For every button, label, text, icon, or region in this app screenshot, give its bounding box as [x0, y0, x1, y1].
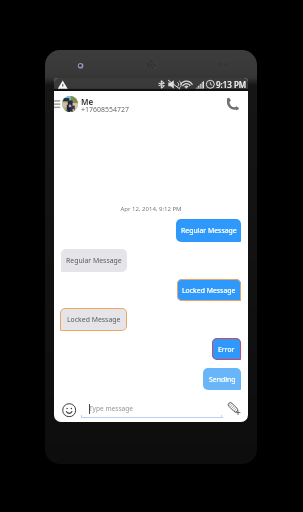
button[interactable]: Locked Message: [60, 308, 127, 331]
staticText: +17608554727: [81, 105, 130, 115]
button[interactable]: Insert emoji: [62, 403, 76, 417]
button[interactable]: Locked Message: [177, 279, 241, 301]
staticText: 9:13 PM: [216, 79, 247, 90]
staticText: Me: [81, 96, 94, 107]
button[interactable]: Regular Message: [61, 249, 127, 272]
button[interactable]: Error: [212, 338, 241, 360]
button[interactable]: Contact photo: [62, 96, 78, 112]
button[interactable]: Sending: [203, 368, 241, 390]
staticText: Error: [218, 345, 235, 354]
staticText: Locked Message: [67, 315, 121, 324]
button[interactable]: Call: [219, 94, 239, 114]
staticText: Regular Message: [181, 226, 237, 235]
button[interactable]: Attach file: [225, 399, 245, 419]
staticText: Apr 12, 2014, 9:12 PM: [54, 205, 248, 213]
button[interactable]: Regular Message: [176, 219, 241, 242]
button[interactable]: Open navigation menu: [54, 90, 62, 112]
staticText: Type message: [89, 404, 134, 413]
staticText: Locked Message: [182, 286, 236, 295]
staticText: Regular Message: [66, 256, 122, 265]
staticText: Sending: [209, 375, 236, 384]
